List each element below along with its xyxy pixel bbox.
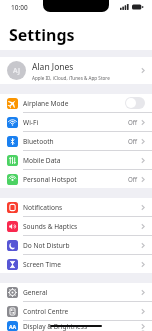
button[interactable]: General <box>0 283 152 301</box>
staticText: Alan Jones <box>32 61 74 73</box>
staticText: Sounds & Haptics <box>23 222 141 231</box>
staticText: Settings <box>9 24 75 46</box>
staticText: Airplane Mode <box>23 99 125 108</box>
staticText: Bluetooth <box>23 137 128 146</box>
staticText: Apple ID, iCloud, iTunes & App Store <box>32 75 110 81</box>
button[interactable]: Screen Time <box>0 255 152 273</box>
button[interactable]: Notifications <box>0 198 152 216</box>
button[interactable]: Airplane Mode <box>0 94 152 112</box>
staticText: Off <box>128 118 138 126</box>
staticText: AJ <box>13 66 20 76</box>
button[interactable]: Bluetooth <box>0 132 152 150</box>
staticText: Display & Brightness <box>23 322 141 331</box>
staticText: Off <box>128 175 138 183</box>
staticText: Personal Hotspot <box>23 175 128 184</box>
staticText: Mobile Data <box>23 156 141 165</box>
button[interactable]: Personal Hotspot <box>0 170 152 188</box>
button[interactable]: Airplane Mode toggle <box>125 97 145 109</box>
staticText: Notifications <box>23 203 141 212</box>
button[interactable]: Sounds & Haptics <box>0 217 152 235</box>
button[interactable]: Mobile Data <box>0 151 152 169</box>
staticText: General <box>23 288 141 297</box>
staticText: Do Not Disturb <box>23 241 141 250</box>
staticText: Wi-Fi <box>23 118 128 127</box>
staticText: Control Centre <box>23 307 141 316</box>
staticText: Off <box>128 137 138 145</box>
button[interactable]: Do Not Disturb <box>0 236 152 254</box>
button[interactable]: AA <box>0 321 152 331</box>
staticText: AA <box>9 323 17 330</box>
button[interactable]: Wi-Fi <box>0 113 152 131</box>
button[interactable]: Control Centre <box>0 302 152 320</box>
staticText: 10:00 <box>11 3 28 12</box>
staticText: Screen Time <box>23 260 141 269</box>
button[interactable]: AJ <box>0 57 152 84</box>
